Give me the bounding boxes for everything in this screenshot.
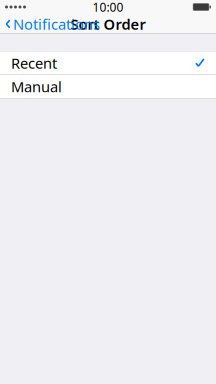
staticText: 10:00 <box>92 0 123 15</box>
button[interactable]: Recent <box>0 51 216 74</box>
button[interactable]: Manual <box>0 75 216 98</box>
staticText: Manual <box>11 77 62 96</box>
staticText: Notifications <box>13 14 100 34</box>
staticText: Recent <box>11 53 57 73</box>
staticText: Sort Order <box>70 14 145 34</box>
button[interactable]: Notifications <box>0 11 100 37</box>
